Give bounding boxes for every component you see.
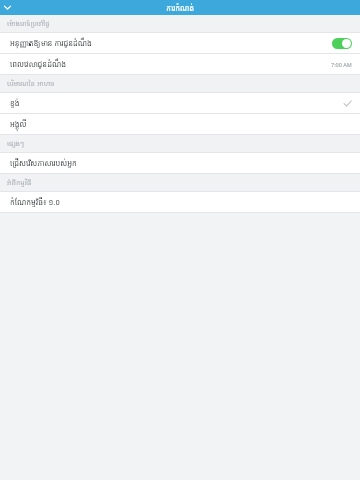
staticText: ម៉ោងរោទ៍ប្រចាំថ្ងៃ xyxy=(7,19,50,29)
button[interactable]: អនុញ្ញាតឱ្យមាន ការជូនដំណឹង xyxy=(0,33,360,53)
button[interactable]: ជ្រើសរើសភាសារបស់អ្នក xyxy=(0,153,360,173)
staticText: អង្គុលី xyxy=(10,119,352,129)
staticText: កំណែកម្មវិធី៖ ១.០ xyxy=(10,197,352,207)
button[interactable]: Toggle notification xyxy=(332,38,352,49)
staticText: ផ្សេងៗ xyxy=(7,139,25,149)
button[interactable]: អង្គុលី xyxy=(0,114,360,134)
staticText: អំពីកម្មវិធី xyxy=(7,178,32,188)
staticText: ការកំណត់ xyxy=(0,3,360,13)
button[interactable]: ខ្ទង់ xyxy=(0,93,360,113)
button[interactable]: Collapse xyxy=(0,0,15,15)
staticText: បរិមាណនៃ អាហារ xyxy=(7,79,54,89)
button[interactable]: កំណែកម្មវិធី៖ ១.០ xyxy=(0,192,360,212)
staticText: ជ្រើសរើសភាសារបស់អ្នក xyxy=(10,158,352,168)
staticText: 7:00 AM xyxy=(331,61,352,68)
staticText: អនុញ្ញាតឱ្យមាន ការជូនដំណឹង xyxy=(10,38,332,48)
button[interactable]: ពេលវេលាជូនដំណឹង xyxy=(0,54,360,74)
staticText: ពេលវេលាជូនដំណឹង xyxy=(10,59,331,69)
staticText: ខ្ទង់ xyxy=(10,98,343,108)
